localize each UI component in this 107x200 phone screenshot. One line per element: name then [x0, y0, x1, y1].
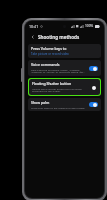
staticText: Floating Shutter button: [32, 81, 72, 86]
button[interactable]: Toggle: [88, 85, 97, 90]
button[interactable]: Press Volume keys to: [28, 44, 101, 58]
button[interactable]: Toggle: [89, 66, 98, 71]
staticText: 10:41: [29, 24, 39, 29]
staticText: Take a picture by saying "Smile", "Chees…: [31, 68, 86, 74]
staticText: Add an extra shutter button you can move…: [32, 87, 85, 93]
staticText: Show palm: [31, 100, 50, 105]
staticText: Take picture or record video: [31, 52, 69, 56]
staticText: Voice commands: [31, 62, 60, 67]
staticText: 100%: [85, 24, 94, 28]
button[interactable]: Back: [29, 33, 36, 40]
staticText: Press Volume keys to: [31, 46, 67, 51]
staticText: Show your palm to the camera to take a s…: [31, 106, 86, 109]
button[interactable]: Show palm: [28, 98, 101, 111]
button[interactable]: Floating Shutter button: [29, 79, 100, 95]
staticText: Shooting methods: [38, 34, 80, 40]
button[interactable]: Toggle: [89, 102, 98, 107]
button[interactable]: Voice commands: [28, 60, 101, 76]
